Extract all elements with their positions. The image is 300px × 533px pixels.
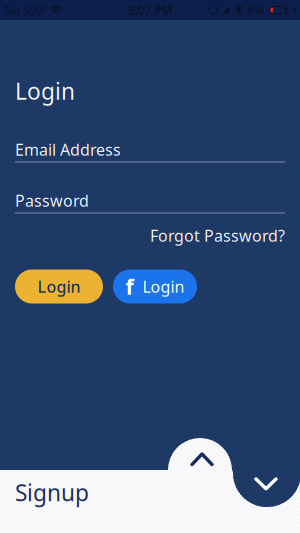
staticText: 6% <box>247 2 264 18</box>
button[interactable]: Password <box>15 190 285 212</box>
button[interactable]: f <box>113 269 197 303</box>
staticText: Email Address <box>15 139 121 160</box>
button[interactable] <box>182 440 222 480</box>
button[interactable]: Login <box>15 269 103 303</box>
button[interactable]: Forgot Password? <box>150 225 285 246</box>
staticText: f <box>125 272 133 301</box>
staticText: Signup <box>15 477 89 507</box>
staticText: Login <box>142 276 184 297</box>
staticText: Forgot Password? <box>150 225 285 246</box>
staticText: 3:07 PM <box>127 2 172 18</box>
staticText: Password <box>15 190 89 211</box>
button[interactable]: Email Address <box>15 139 285 161</box>
button[interactable]: Signup <box>15 477 89 507</box>
staticText: Login <box>15 76 75 106</box>
staticText: No SIM <box>4 2 45 18</box>
staticText: Login <box>37 276 80 297</box>
button[interactable] <box>246 464 286 504</box>
